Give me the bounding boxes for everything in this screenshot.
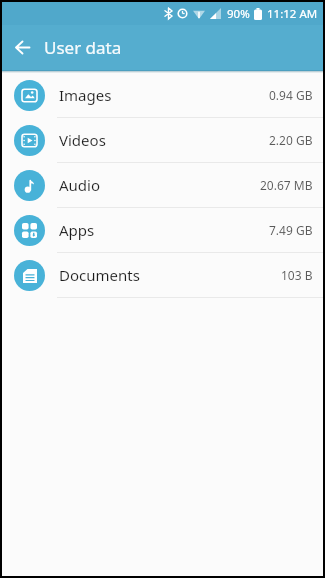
button[interactable]: Apps (2, 208, 323, 252)
staticText: User data (44, 36, 122, 59)
button[interactable]: Documents (2, 253, 323, 297)
button[interactable]: Images (2, 73, 323, 117)
button[interactable]: Audio (2, 163, 323, 207)
staticText: Videos (59, 130, 106, 150)
staticText: Audio (59, 175, 101, 195)
staticText: 20.67 MB (260, 177, 313, 193)
staticText: 90% (227, 6, 250, 22)
staticText: 11:12 AM (267, 6, 318, 22)
staticText: 2.20 GB (269, 132, 313, 148)
button[interactable] (8, 33, 37, 62)
staticText: Apps (59, 220, 95, 240)
staticText: Documents (59, 265, 140, 285)
staticText: 103 B (281, 267, 313, 283)
button[interactable]: Videos (2, 118, 323, 162)
staticText: 0.94 GB (269, 87, 313, 103)
staticText: 7.49 GB (269, 222, 313, 238)
staticText: Images (59, 85, 112, 105)
